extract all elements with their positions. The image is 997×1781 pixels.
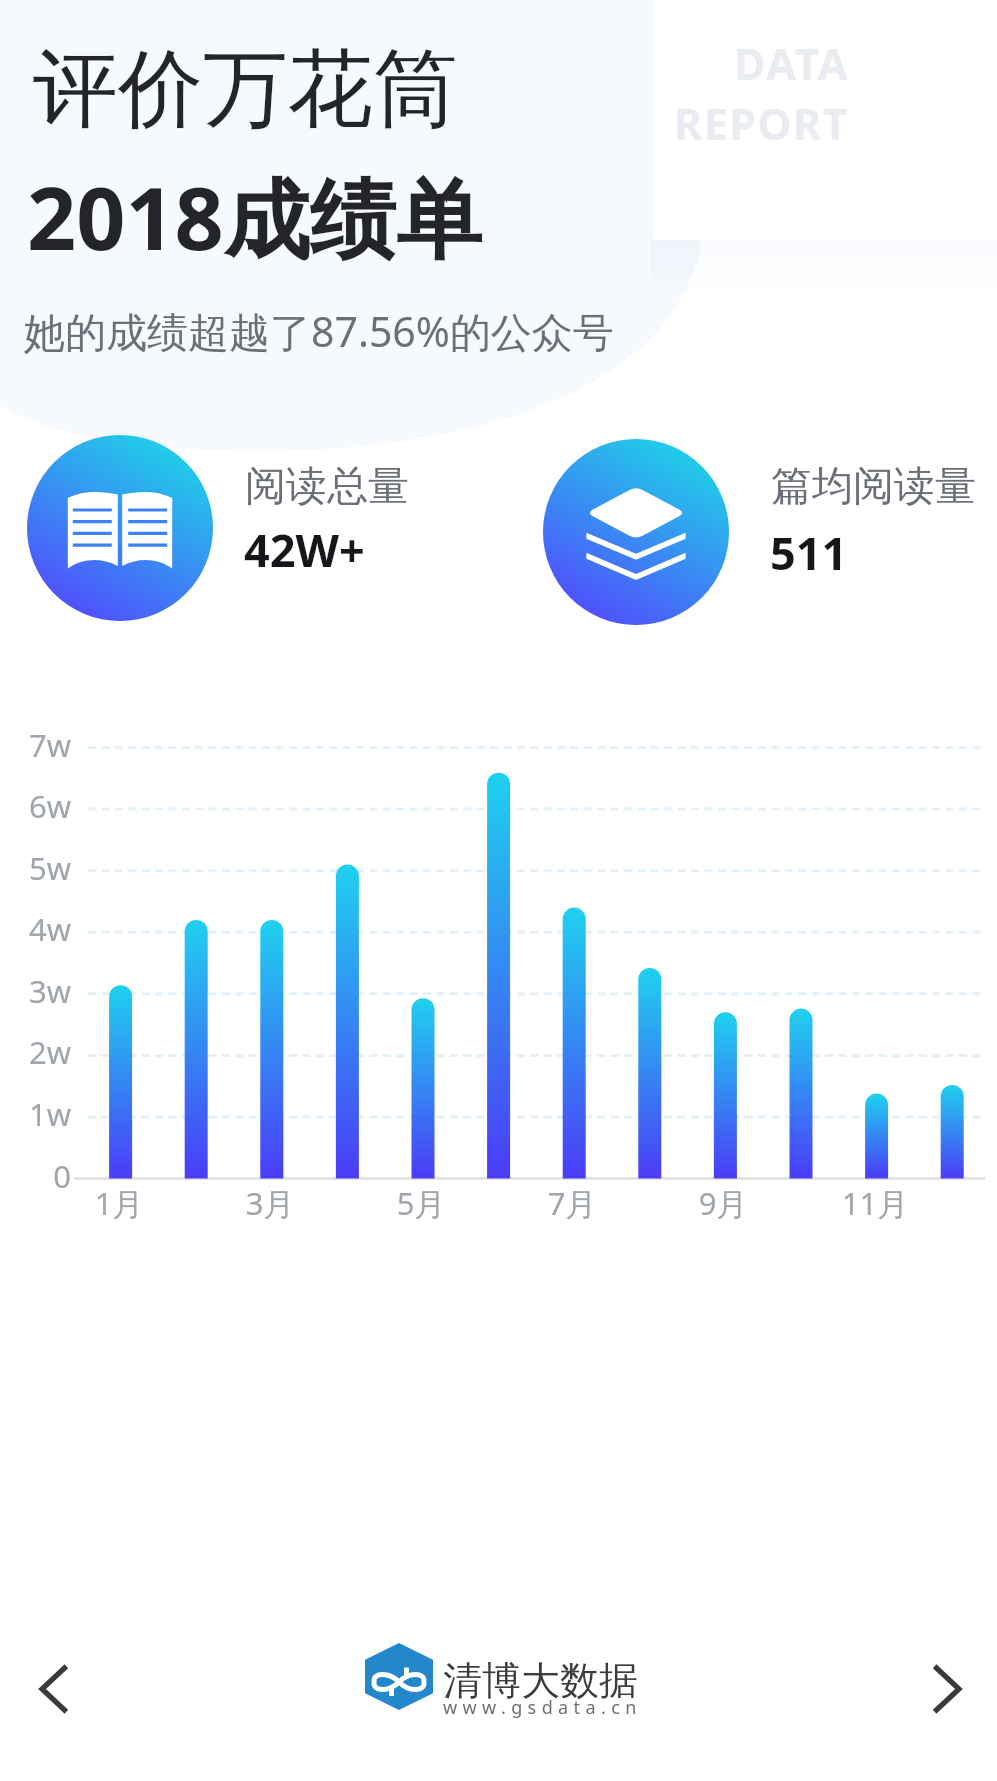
staticText: 511 (770, 522, 848, 583)
staticText: 1月 (59, 1182, 179, 1224)
staticText: www.gsdata.cn (443, 1695, 642, 1720)
staticText: 5月 (361, 1182, 481, 1224)
staticText: REPORT (653, 94, 849, 153)
staticText: 阅读总量 (245, 461, 409, 513)
staticText: 11月 (815, 1182, 935, 1224)
staticText: 篇均阅读量 (771, 461, 976, 513)
staticText: 7w (0, 724, 71, 766)
button[interactable]: Previous page (18, 1654, 88, 1724)
staticText: 42W+ (244, 519, 365, 580)
staticText: 5w (0, 847, 71, 889)
staticText: 3w (0, 970, 71, 1012)
staticText: 清博大数据 (443, 1656, 638, 1705)
staticText: DATA (653, 34, 849, 93)
staticText: 3月 (210, 1182, 330, 1224)
staticText: 6w (0, 785, 71, 827)
staticText: 2018成绩单 (27, 158, 482, 275)
button[interactable] (543, 439, 729, 625)
staticText: 她的成绩超越了87.56%的公众号 (24, 303, 614, 359)
staticText: 7月 (512, 1182, 632, 1224)
staticText: 2w (0, 1031, 71, 1073)
staticText: 0 (0, 1155, 71, 1197)
staticText: 4w (0, 908, 71, 950)
button[interactable] (27, 435, 213, 621)
staticText: 1w (0, 1093, 71, 1135)
button[interactable]: 清博大数据 (365, 1643, 637, 1723)
button[interactable]: Next page (913, 1654, 983, 1724)
staticText: 9月 (663, 1182, 783, 1224)
staticText: 评价万花筒 (33, 36, 458, 143)
